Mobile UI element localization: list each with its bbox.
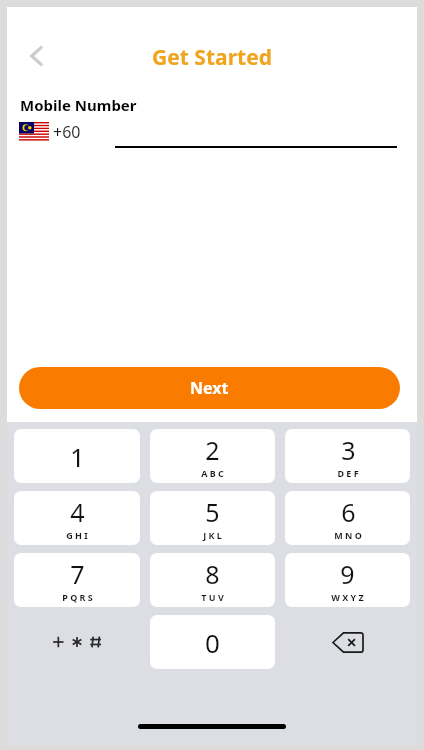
staticText: 0 [205,625,220,660]
staticText: Next [190,377,229,399]
button[interactable]: 7 [14,553,140,607]
button[interactable]: Back [15,34,59,78]
staticText: 1 [70,439,85,474]
staticText: Mobile Number [20,95,137,115]
staticText: 3 [341,433,356,467]
staticText: T U V [201,591,224,603]
staticText: 4 [70,495,85,529]
button[interactable]: 1 [14,429,140,483]
button[interactable]: 3 [285,429,410,483]
staticText: G H I [66,529,88,541]
button[interactable]: 2 [150,429,275,483]
button[interactable]: Symbols [14,615,140,669]
staticText: Get Started [152,43,272,72]
button[interactable]: Next [19,367,400,409]
button[interactable]: 9 [285,553,410,607]
staticText: 6 [341,495,356,529]
button[interactable]: 6 [285,491,410,545]
staticText: +60 [53,121,81,143]
staticText: 9 [340,557,355,591]
button[interactable]: 5 [150,491,275,545]
button[interactable]: 8 [150,553,275,607]
staticText: M N O [334,529,362,541]
staticText: W X Y Z [331,591,364,603]
staticText: D E F [337,467,359,479]
button[interactable]: 4 [14,491,140,545]
staticText: A B C [201,467,224,479]
button[interactable]: 0 [150,615,275,669]
staticText: P Q R S [62,591,93,603]
staticText: 7 [70,557,85,591]
button[interactable]: Backspace [285,615,410,669]
staticText: 2 [205,433,220,467]
staticText: J K L [203,529,222,541]
button[interactable]: Select country code [19,121,81,143]
staticText: 5 [205,495,220,529]
staticText: 8 [205,557,220,591]
